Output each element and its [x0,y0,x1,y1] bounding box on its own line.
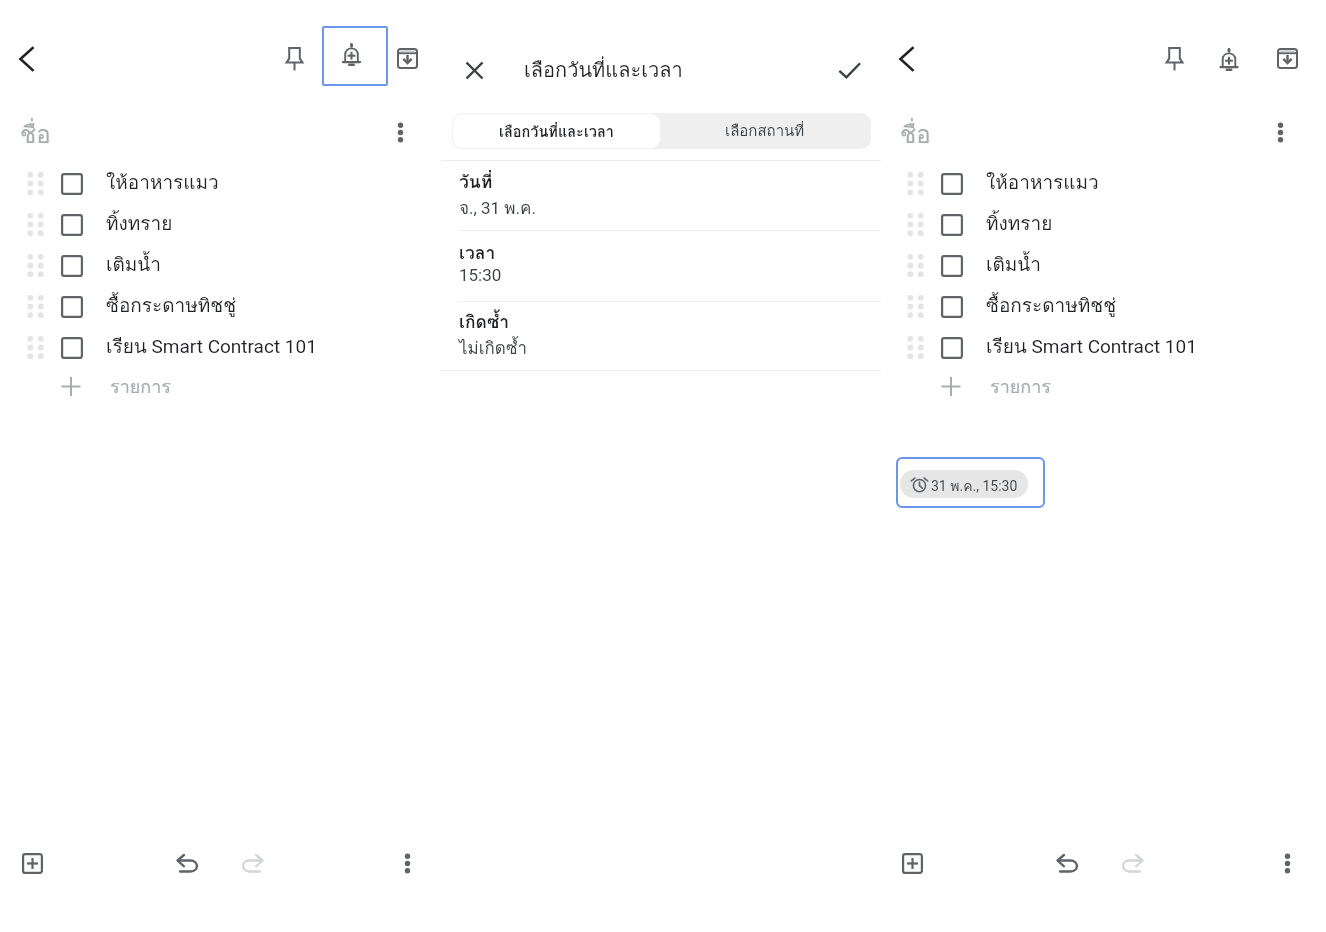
staticText: เลือกสถานที่ [725,119,805,143]
button[interactable]: Back [890,43,922,75]
staticText: วันที่ [459,168,493,196]
staticText: รายการ [990,372,1051,401]
button[interactable]: Redo [1116,847,1149,880]
button[interactable]: ทิ้งทราย [880,204,1310,245]
staticText: 31 พ.ค., 15:30 [931,475,1018,497]
button[interactable]: ซื้อกระดาษทิชชู่ [0,286,430,327]
staticText: รายการ [110,372,171,401]
button[interactable]: เติมน้ำ [0,245,430,286]
button[interactable]: Done [833,53,865,85]
button[interactable]: Reminder [322,26,388,86]
staticText: เติมน้ำ [106,249,162,279]
button[interactable]: วันที่ [441,160,881,230]
button[interactable]: More options [1266,117,1295,148]
button[interactable]: Add [16,847,49,880]
button[interactable]: Undo [171,847,204,880]
staticText: เรียน Smart Contract 101 [106,331,317,361]
button[interactable]: เติมน้ำ [880,245,1310,286]
staticText: เวลา [459,239,496,267]
button[interactable]: รายการ [0,366,430,407]
staticText: ชื่อ [900,115,931,153]
staticText: ทิ้งทราย [106,208,173,238]
button[interactable]: Reminder 31 May, 15:30 [896,457,1045,508]
button[interactable]: Pin [1159,42,1190,74]
staticText: 15:30 [459,265,502,285]
button[interactable]: ให้อาหารแมว [0,163,430,204]
button[interactable]: เลือกวันที่และเวลา [453,114,660,148]
button[interactable]: Close [457,53,489,85]
button[interactable]: รายการ [880,366,1310,407]
button[interactable]: Redo [236,847,269,880]
staticText: เติมน้ำ [986,249,1042,279]
button[interactable]: More options [392,847,423,880]
button[interactable]: เลือกสถานที่ [659,113,871,149]
button[interactable]: ทิ้งทราย [0,204,430,245]
staticText: เลือกวันที่และเวลา [524,54,683,86]
staticText: ไม่เกิดซ้ำ [459,334,527,361]
button[interactable]: ให้อาหารแมว [880,163,1310,204]
button[interactable]: More options [1272,847,1303,880]
button[interactable]: Add [896,847,929,880]
button[interactable]: Undo [1051,847,1084,880]
button[interactable]: เวลา [441,231,881,301]
staticText: เกิดซ้ำ [459,308,510,336]
button[interactable]: Reminder [1211,43,1249,75]
button[interactable]: More options [386,117,415,148]
button[interactable]: เรียน Smart Contract 101 [880,327,1310,368]
staticText: ชื่อ [20,115,51,153]
button[interactable]: ซื้อกระดาษทิชชู่ [880,286,1310,327]
staticText: ทิ้งทราย [986,208,1053,238]
staticText: ให้อาหารแมว [106,167,219,197]
button[interactable]: Archive [1272,43,1303,74]
button[interactable]: Pin [279,42,310,74]
staticText: ซื้อกระดาษทิชชู่ [986,290,1117,320]
staticText: เลือกวันที่และเวลา [499,120,614,143]
staticText: จ., 31 พ.ค. [459,194,536,221]
button[interactable]: เกิดซ้ำ [441,300,881,370]
staticText: ให้อาหารแมว [986,167,1099,197]
button[interactable]: Archive [392,43,423,74]
staticText: ซื้อกระดาษทิชชู่ [106,290,237,320]
button[interactable]: เรียน Smart Contract 101 [0,327,430,368]
staticText: เรียน Smart Contract 101 [986,331,1197,361]
button[interactable]: Back [10,43,42,75]
